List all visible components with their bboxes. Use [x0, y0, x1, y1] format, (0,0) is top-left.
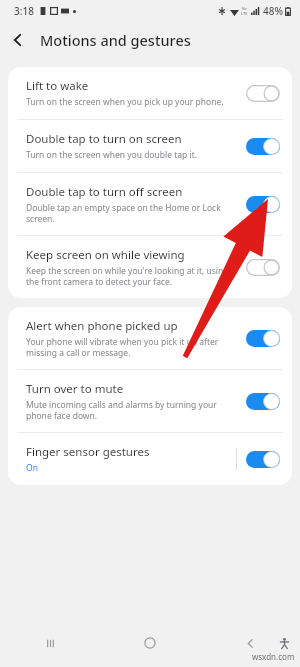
staticText: 3:18: [14, 4, 34, 18]
staticText: Vo: [242, 6, 247, 11]
button[interactable]: Home: [100, 619, 200, 667]
button[interactable]: On: [246, 451, 280, 468]
button[interactable]: Alert when phone picked up: [8, 307, 292, 369]
staticText: Keep screen on while viewing: [26, 247, 185, 263]
staticText: Double tap to turn on screen: [26, 131, 182, 147]
staticText: Turn on the screen when you pick up your…: [26, 96, 224, 108]
staticText: Your phone will vibrate when you pick it…: [26, 336, 238, 358]
button[interactable]: Recents: [0, 619, 100, 667]
button[interactable]: On: [246, 196, 280, 213]
button[interactable]: On: [246, 393, 280, 410]
staticText: Double tap to turn off screen: [26, 184, 183, 200]
button[interactable]: On: [246, 138, 280, 155]
button[interactable]: Lift to wake: [8, 67, 292, 119]
staticText: Double tap an empty space on the Home or…: [26, 202, 238, 224]
staticText: Alert when phone picked up: [26, 318, 178, 334]
button[interactable]: Off: [246, 85, 280, 102]
staticText: 48%: [263, 4, 283, 18]
staticText: Mute incoming calls and alarms by turnin…: [26, 399, 238, 421]
button[interactable]: Turn over to mute: [8, 370, 292, 432]
button[interactable]: Finger sensor gestures: [8, 433, 292, 485]
button[interactable]: Keep screen on while viewing: [8, 236, 292, 298]
staticText: Motions and gestures: [40, 30, 191, 50]
button[interactable]: Back: [0, 22, 36, 58]
staticText: wsxdn.com: [252, 651, 295, 662]
staticText: Lift to wake: [26, 78, 89, 94]
staticText: Turn on the screen when you double tap i…: [26, 149, 197, 161]
staticText: On: [26, 462, 38, 474]
staticText: Turn over to mute: [26, 381, 124, 397]
button[interactable]: Double tap to turn off screen: [8, 173, 292, 235]
button[interactable]: On: [246, 330, 280, 347]
button[interactable]: Back: [200, 619, 300, 667]
staticText: Keep the screen on while you're looking …: [26, 265, 238, 287]
button[interactable]: Off: [246, 259, 280, 276]
staticText: Finger sensor gestures: [26, 444, 150, 460]
staticText: LTE: [241, 11, 248, 16]
button[interactable]: Double tap to turn on screen: [8, 120, 292, 172]
